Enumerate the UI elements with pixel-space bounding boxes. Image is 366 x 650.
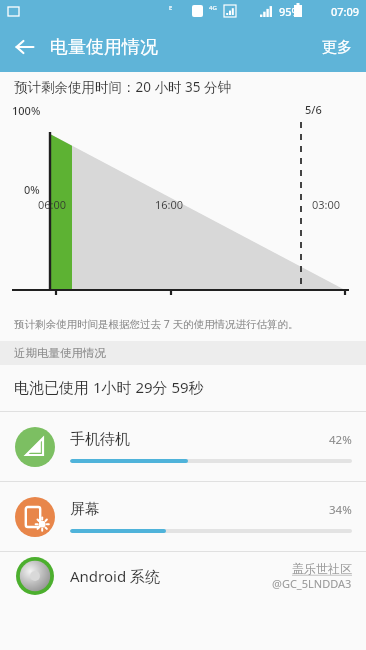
staticText: 预计剩余使用时间是根据您过去 7 天的使用情况进行估算的。 — [14, 317, 299, 331]
staticText: 03:00 — [312, 197, 341, 212]
button[interactable]: 更多 — [308, 28, 366, 67]
staticText: 100% — [12, 103, 41, 118]
staticText: Android 系统 — [70, 566, 272, 586]
staticText: 07:09 — [331, 4, 360, 19]
staticText: E — [169, 4, 173, 12]
staticText: 42% — [329, 432, 352, 448]
staticText: 06:00 — [38, 197, 67, 212]
staticText: 0% — [24, 182, 40, 197]
staticText: 电量使用情况 — [50, 36, 158, 59]
staticText: 5/6 — [305, 102, 322, 117]
staticText: 95% — [279, 4, 301, 19]
staticText: 预计剩余使用时间：20 小时 35 分钟 — [14, 78, 231, 96]
staticText: 电池已使用 1小时 29分 59秒 — [14, 377, 204, 397]
button[interactable]: 手机待机 — [0, 412, 366, 481]
button[interactable]: Android 系统 — [0, 552, 366, 600]
staticText: @GC_5LNDDA3 — [272, 576, 352, 591]
button[interactable]: 屏幕 — [0, 482, 366, 551]
button[interactable]: Back — [6, 28, 44, 66]
staticText: 屏幕 — [70, 500, 329, 519]
staticText: 手机待机 — [70, 430, 329, 449]
staticText: 近期电量使用情况 — [14, 346, 106, 360]
staticText: 34% — [329, 502, 352, 518]
staticText: 4G — [209, 4, 217, 12]
staticText: 16:00 — [155, 197, 184, 212]
staticText: 盖乐世社区 — [292, 561, 352, 576]
staticText: 更多 — [322, 38, 352, 57]
